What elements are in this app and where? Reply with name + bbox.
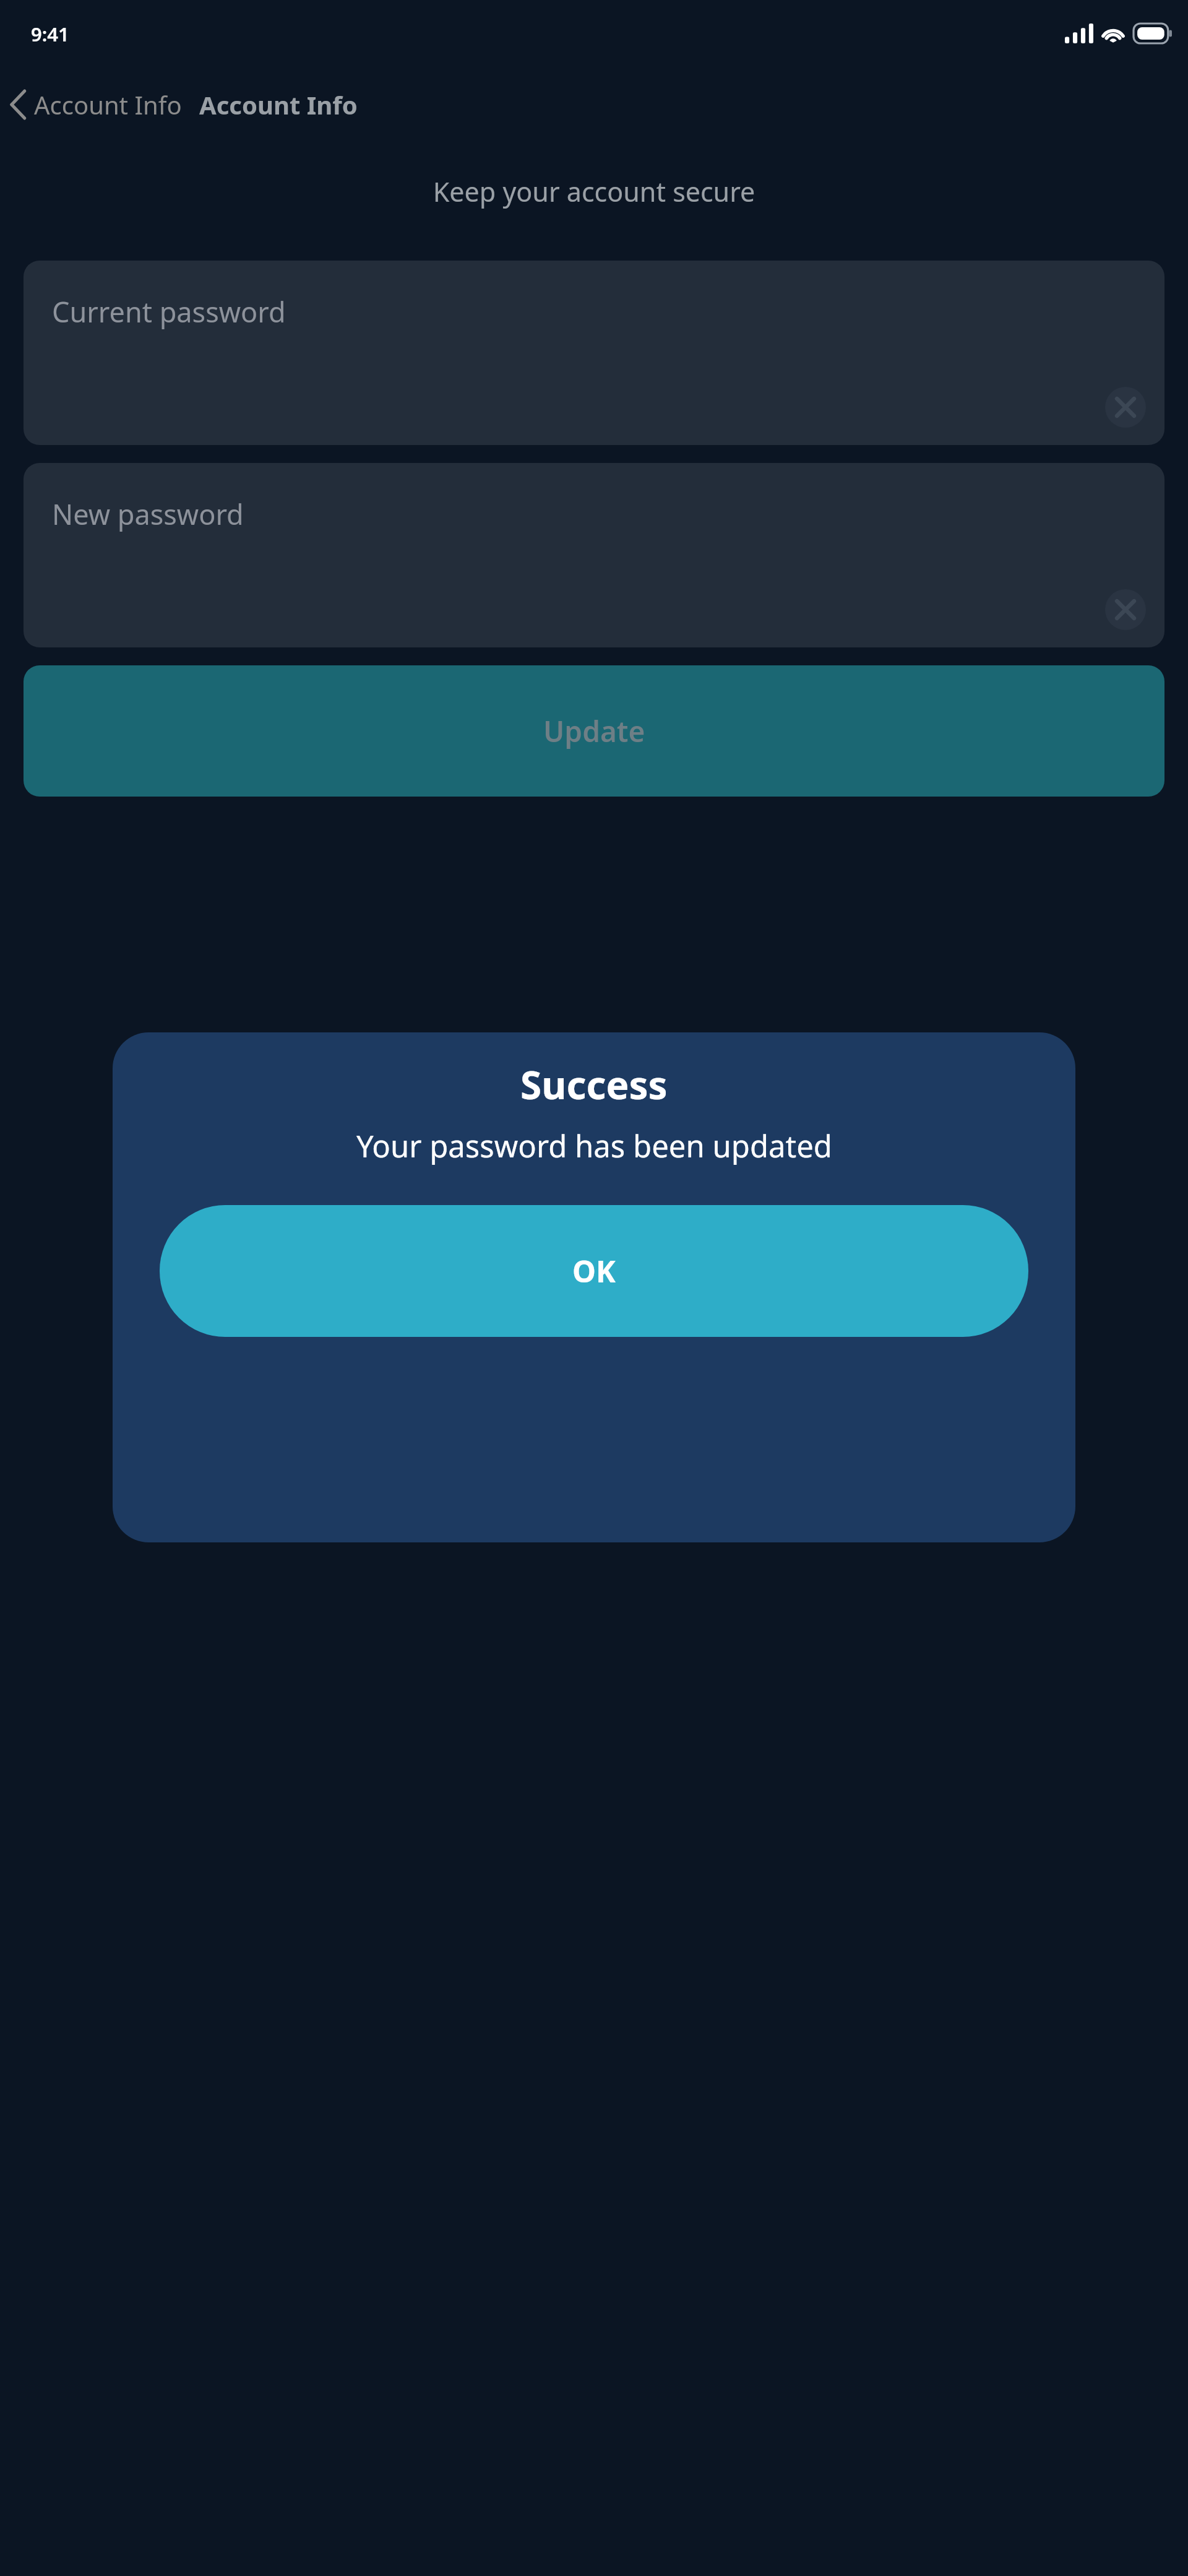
staticText: Account Info (199, 88, 358, 121)
button[interactable]: Back to Account Info (0, 85, 188, 124)
button[interactable]: Clear text (1105, 589, 1146, 630)
staticText: Current password (52, 293, 286, 331)
staticText: Keep your account secure (0, 173, 1188, 210)
staticText: Update (543, 712, 645, 751)
staticText: OK (572, 1251, 616, 1291)
staticText: New password (52, 495, 244, 533)
staticText: Success (520, 1058, 668, 1110)
button[interactable]: OK (160, 1205, 1028, 1337)
button[interactable]: New password (24, 463, 1164, 647)
button[interactable]: Clear text (1105, 387, 1146, 428)
staticText: Your password has been updated (356, 1125, 832, 1167)
staticText: 9:41 (31, 21, 69, 47)
button[interactable]: Update (24, 665, 1164, 797)
staticText: Account Info (34, 88, 182, 121)
button[interactable]: Current password (24, 261, 1164, 445)
